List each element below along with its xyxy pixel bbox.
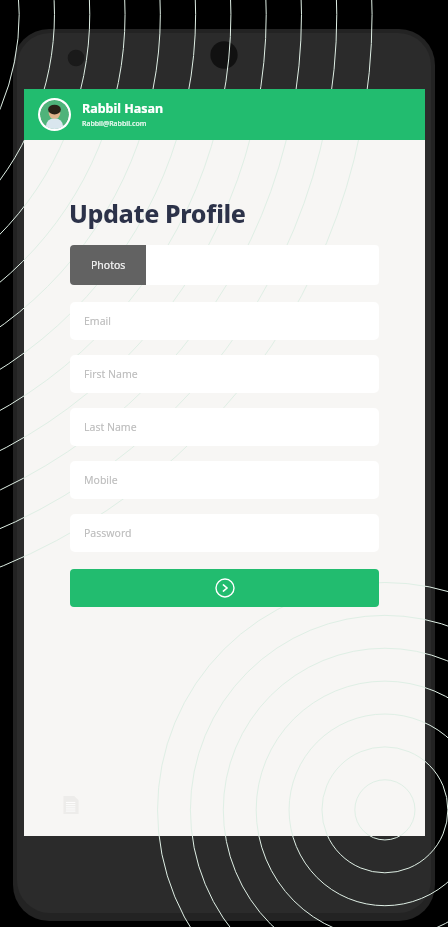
staticText: Password: [84, 526, 132, 540]
staticText: Mobile: [84, 473, 118, 487]
button[interactable]: Mobile: [70, 461, 379, 499]
button[interactable]: Password: [70, 514, 379, 552]
button[interactable]: First Name: [70, 355, 379, 393]
staticText: First Name: [84, 367, 138, 381]
staticText: Update Profile: [69, 196, 246, 230]
button[interactable]: Email: [70, 302, 379, 340]
button[interactable]: Photos: [70, 245, 379, 285]
staticText: Photos: [91, 258, 126, 272]
button[interactable]: Profile photo: [40, 100, 69, 129]
button[interactable]: Last Name: [70, 408, 379, 446]
staticText: Last Name: [84, 420, 137, 434]
staticText: Email: [84, 314, 111, 328]
button[interactable]: Photos: [70, 245, 146, 285]
staticText: Rabbil@Rabbil.com: [82, 119, 147, 129]
staticText: Rabbil Hasan: [82, 100, 164, 117]
button[interactable]: Submit: [70, 569, 379, 607]
